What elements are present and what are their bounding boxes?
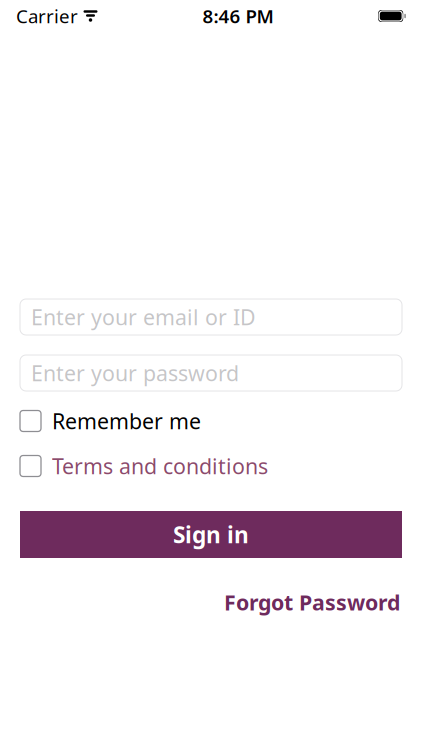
staticText: Remember me xyxy=(52,407,201,435)
staticText: 8:46 PM xyxy=(203,4,274,28)
staticText: Enter your email or ID xyxy=(31,303,256,331)
staticText: Forgot Password xyxy=(224,588,400,616)
button[interactable]: Remember me xyxy=(20,408,402,434)
staticText: Terms and conditions xyxy=(52,452,268,480)
staticText: Carrier xyxy=(16,4,78,28)
staticText: Sign in xyxy=(173,519,249,549)
button[interactable]: Sign in xyxy=(20,511,402,558)
button[interactable]: Enter your email or ID xyxy=(20,299,402,335)
button[interactable]: Enter your password xyxy=(20,355,402,391)
button[interactable]: Forgot Password xyxy=(222,584,402,620)
staticText: Enter your password xyxy=(31,359,239,387)
button[interactable]: Terms and conditions xyxy=(20,453,402,479)
